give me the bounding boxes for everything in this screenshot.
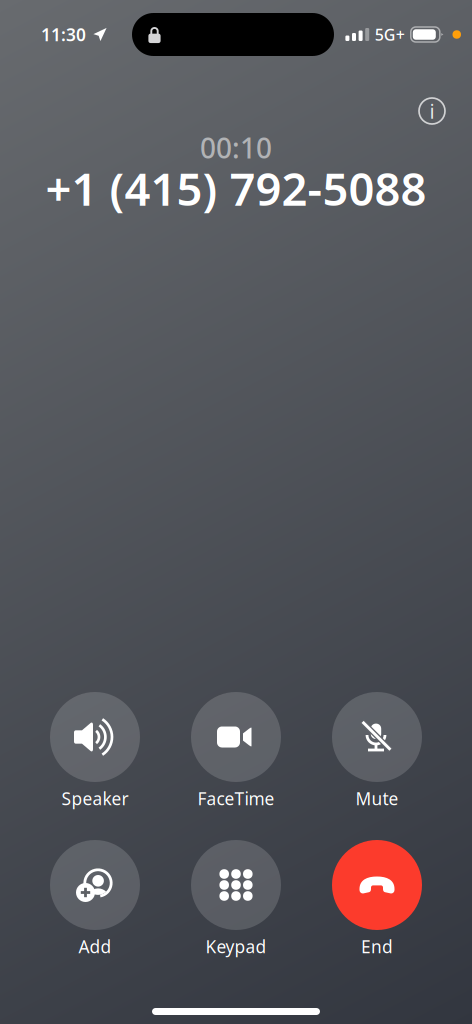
- staticText: 11:30: [41, 23, 86, 46]
- staticText: i: [429, 98, 434, 124]
- button[interactable]: Keypad: [178, 840, 294, 958]
- staticText: Keypad: [205, 935, 266, 958]
- button[interactable]: Speaker: [37, 692, 153, 810]
- staticText: 5G+: [375, 24, 405, 45]
- staticText: +1 (415) 792-5088: [45, 158, 426, 218]
- staticText: End: [361, 935, 393, 958]
- staticText: 00:10: [200, 129, 272, 166]
- staticText: Speaker: [61, 787, 128, 810]
- button[interactable]: Add call: [37, 840, 153, 958]
- button[interactable]: Call info: [410, 89, 454, 133]
- button[interactable]: FaceTime: [178, 692, 294, 810]
- staticText: FaceTime: [197, 787, 274, 810]
- button[interactable]: Mute: [319, 692, 435, 810]
- staticText: Add: [78, 935, 111, 958]
- button[interactable]: End call: [319, 840, 435, 958]
- staticText: Mute: [355, 787, 398, 810]
